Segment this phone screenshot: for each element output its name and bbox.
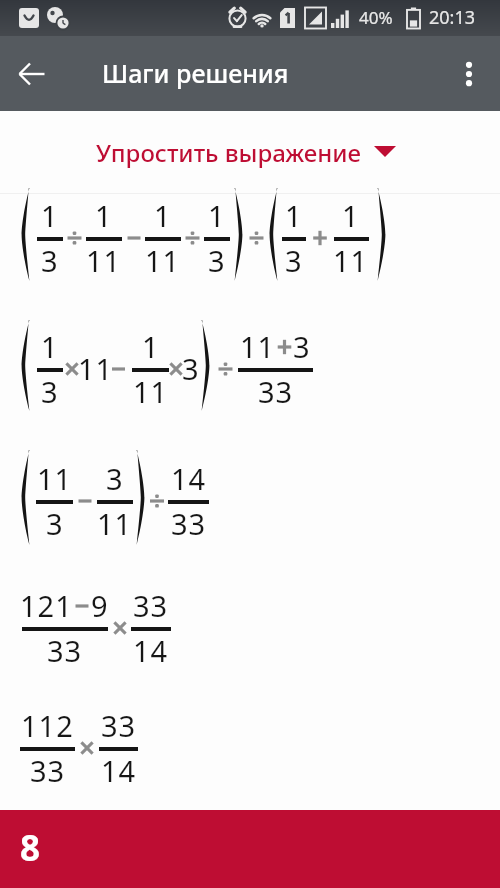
staticText: 11 [78,349,114,388]
staticText: 1 [95,196,113,235]
button[interactable]: Упростить выражение [84,126,408,179]
staticText: 40% [359,6,393,29]
staticText: 8 [20,824,41,872]
button[interactable]: 11 [0,434,500,561]
button[interactable]: 1 [0,194,500,302]
staticText: 20:13 [429,5,476,30]
button[interactable]: 8 [0,810,500,888]
button[interactable]: 121 [0,561,500,688]
staticText: 1 [41,196,59,235]
staticText: 3 [41,241,59,280]
staticText: 1 [285,196,303,235]
staticText: 33 [47,631,83,670]
staticText: 11 [97,504,133,543]
staticText: 1 [41,327,59,366]
staticText: 1 [142,327,160,366]
staticText: 3 [293,327,311,366]
staticText: 33 [30,751,66,790]
staticText: 121 [20,586,73,625]
button[interactable]: Back [9,51,55,97]
staticText: 33 [133,586,169,625]
staticText: 3 [106,459,124,498]
staticText: 14 [133,631,169,670]
staticText: 11 [333,241,369,280]
staticText: 3 [182,349,200,388]
staticText: 11 [86,241,122,280]
staticText: 11 [145,241,181,280]
staticText: Упростить выражение [96,136,362,169]
staticText: 11 [37,459,73,498]
staticText: 33 [101,706,137,745]
staticText: 33 [258,372,294,411]
button[interactable]: 112 [0,688,500,808]
staticText: 3 [41,372,59,411]
staticText: 3 [285,241,303,280]
staticText: 3 [46,504,64,543]
staticText: 11 [240,327,276,366]
staticText: 112 [21,706,74,745]
staticText: 1 [154,196,172,235]
staticText: 14 [171,459,207,498]
button[interactable]: More options [447,52,491,96]
staticText: 33 [171,504,207,543]
staticText: 9 [91,586,109,625]
staticText: 11 [133,372,169,411]
staticText: 1 [342,196,360,235]
staticText: 3 [208,241,226,280]
staticText: 14 [101,751,137,790]
button[interactable]: 1 [0,302,500,434]
staticText: 1 [208,196,226,235]
staticText: Шаги решения [102,56,289,90]
